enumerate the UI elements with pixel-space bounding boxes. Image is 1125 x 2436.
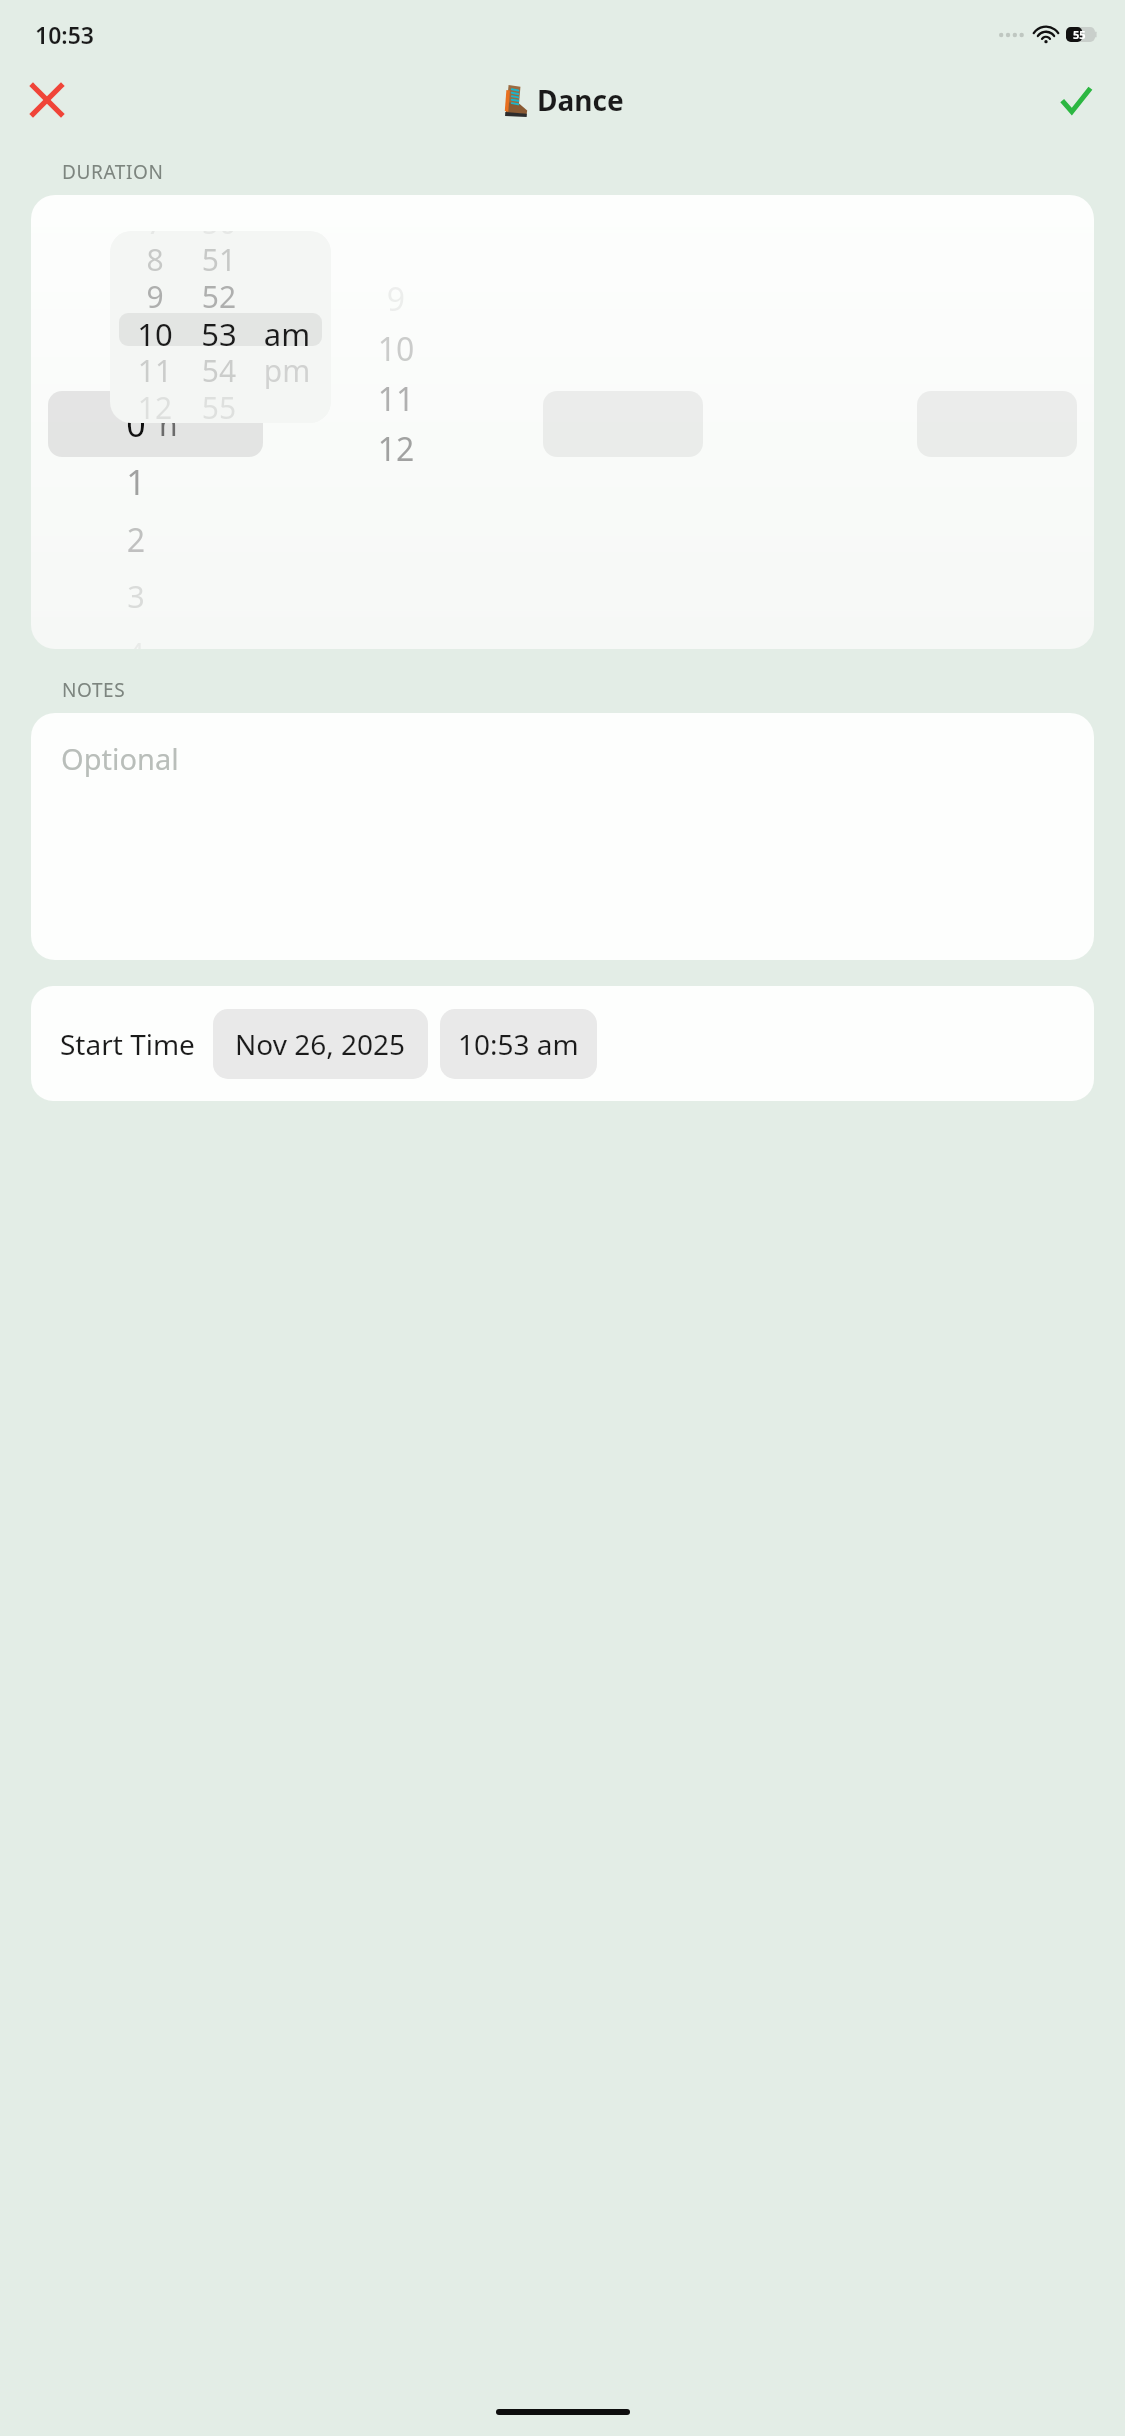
- staticText: Nov 26, 2025: [235, 1025, 406, 1063]
- staticText: 50: [190, 231, 248, 243]
- staticText: 12: [126, 387, 184, 423]
- staticText: h: [159, 404, 178, 445]
- staticText: 53: [190, 313, 248, 355]
- staticText: 55: [1073, 27, 1086, 42]
- staticText: 10: [351, 327, 441, 371]
- staticText: 9: [126, 276, 184, 317]
- staticText: 10:53: [35, 19, 94, 50]
- button[interactable]: Cancel: [18, 71, 76, 129]
- staticText: 10: [126, 313, 184, 355]
- staticText: 3: [91, 575, 181, 617]
- staticText: Optional: [61, 739, 179, 778]
- button[interactable]: 0: [31, 195, 1094, 649]
- button[interactable]: 10:53 am: [440, 1009, 597, 1079]
- staticText: 11: [351, 377, 441, 421]
- button[interactable]: Nov 26, 2025: [213, 1009, 428, 1079]
- staticText: pm: [256, 350, 318, 391]
- staticText: 51: [190, 239, 248, 280]
- staticText: 10:53 am: [458, 1025, 579, 1063]
- staticText: 1: [91, 459, 181, 505]
- staticText: 2: [91, 517, 181, 561]
- staticText: 11: [126, 350, 184, 391]
- staticText: 12: [351, 427, 441, 471]
- staticText: 54: [190, 350, 248, 391]
- staticText: Start Time: [60, 1025, 195, 1063]
- staticText: 0: [91, 401, 181, 447]
- staticText: 8: [126, 239, 184, 280]
- staticText: NOTES: [62, 677, 126, 703]
- button[interactable]: 9: [110, 231, 331, 423]
- staticText: 52: [190, 276, 248, 317]
- staticText: am: [256, 313, 318, 355]
- button[interactable]: Save: [1047, 71, 1105, 129]
- staticText: Dance: [537, 81, 624, 119]
- button[interactable]: Optional: [31, 713, 1094, 960]
- staticText: 55: [190, 387, 248, 423]
- staticText: DURATION: [62, 159, 164, 185]
